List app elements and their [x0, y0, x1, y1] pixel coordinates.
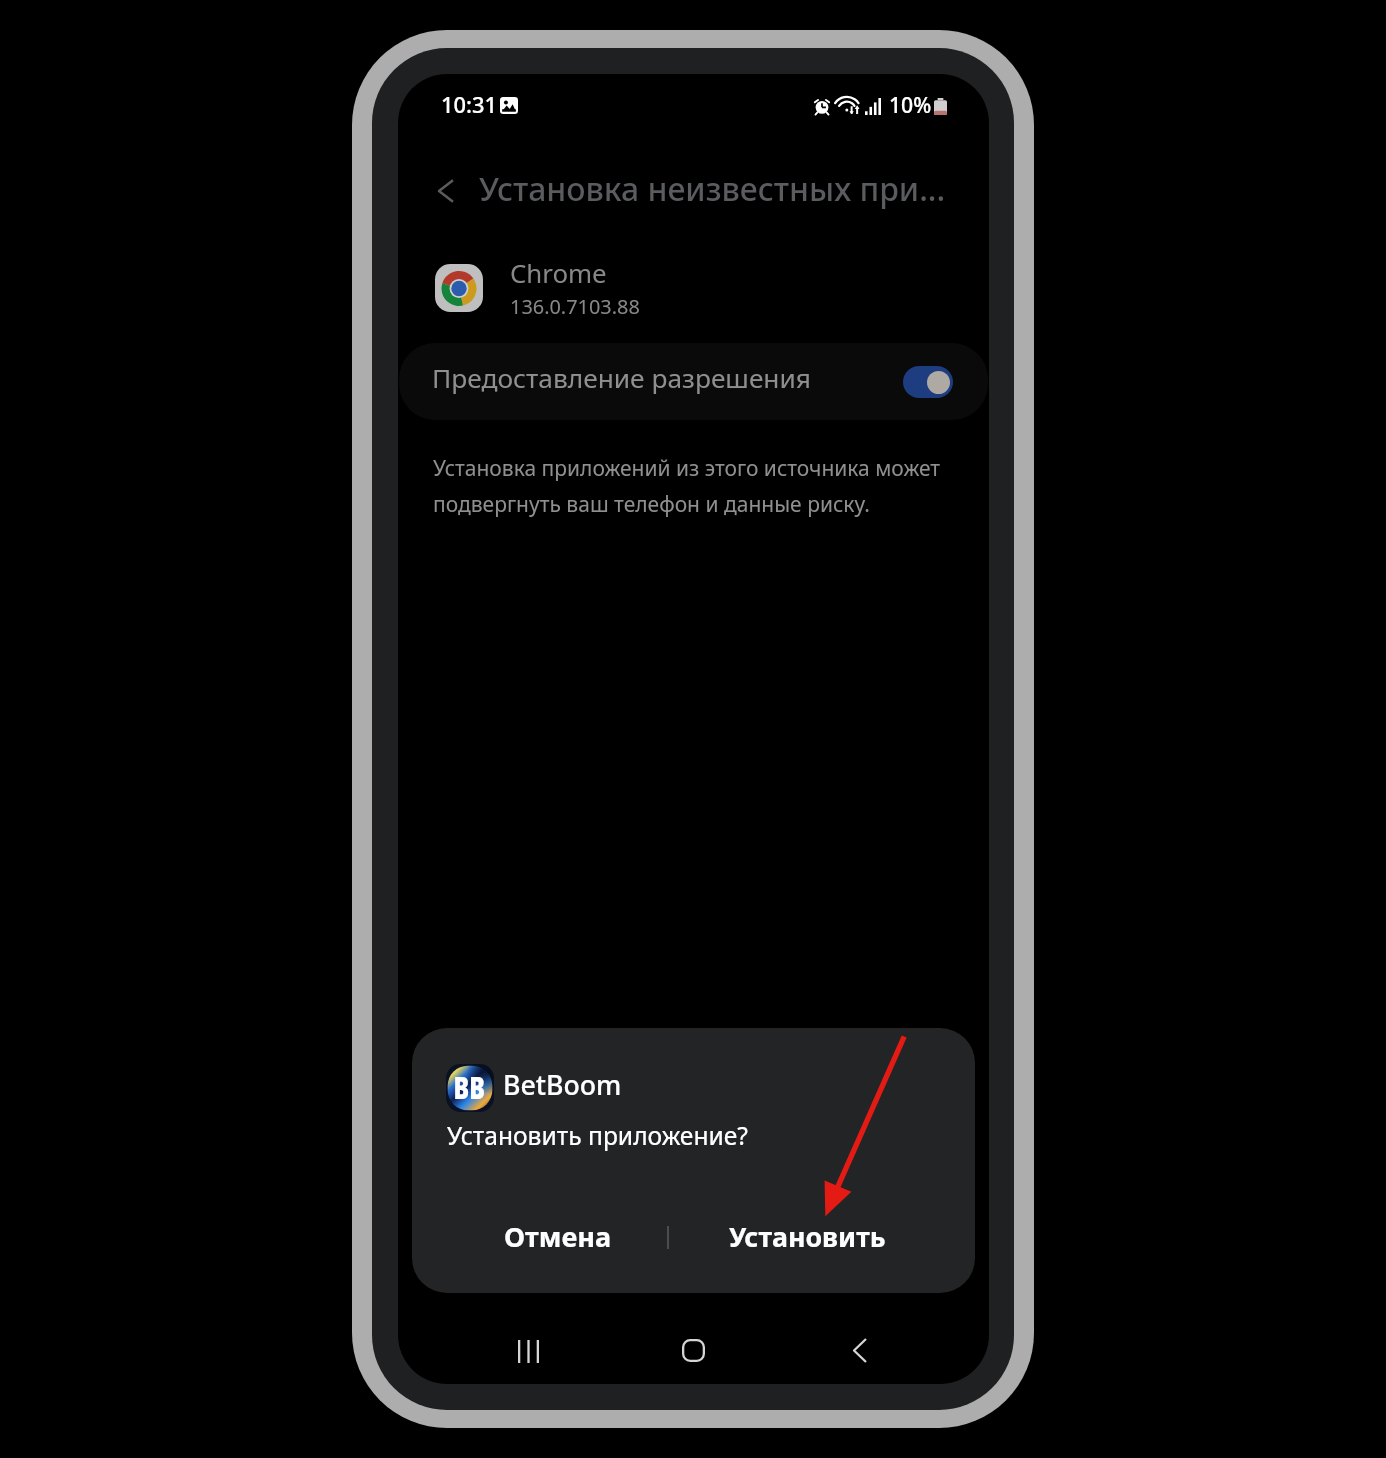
staticText: Отмена	[504, 1218, 612, 1255]
staticText: 136.0.7103.88	[510, 293, 640, 320]
button[interactable]: Установить	[684, 1205, 930, 1267]
staticText: Установить	[729, 1218, 886, 1255]
staticText: Установка неизвестных при...	[479, 167, 946, 211]
staticText: Установка приложений из этого источника …	[433, 454, 953, 518]
staticText: Установить приложение?	[447, 1119, 749, 1153]
button[interactable]: Предоставление разрешения	[903, 366, 953, 398]
staticText: 10%	[889, 90, 932, 119]
button[interactable]: Предоставление разрешения	[399, 343, 988, 420]
staticText: 10:31	[441, 90, 498, 120]
staticText: Chrome	[510, 255, 607, 290]
staticText: BB	[453, 1067, 485, 1108]
button[interactable]: Назад	[419, 165, 471, 217]
staticText: Предоставление разрешения	[432, 360, 812, 396]
button[interactable]: Главная	[667, 1324, 719, 1376]
staticText: BetBoom	[503, 1066, 622, 1102]
button[interactable]: Назад	[834, 1324, 886, 1376]
button[interactable]: Недавние	[502, 1325, 554, 1377]
button[interactable]: Отмена	[442, 1205, 673, 1267]
